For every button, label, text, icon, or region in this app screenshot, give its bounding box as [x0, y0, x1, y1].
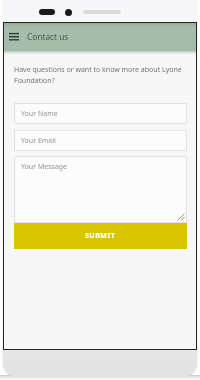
- staticText: Have questions or want to know more abou…: [14, 65, 186, 85]
- staticText: Contact us: [27, 31, 69, 42]
- button[interactable]: Your Message: [14, 156, 187, 223]
- staticText: SUBMIT: [85, 231, 116, 241]
- button[interactable]: Your Name: [14, 103, 187, 124]
- button[interactable]: SUBMIT: [14, 223, 187, 249]
- button[interactable]: Your Email: [14, 130, 187, 151]
- staticText: Your Name: [21, 109, 58, 119]
- button[interactable]: Open navigation menu: [6, 29, 22, 45]
- staticText: Your Email: [21, 136, 56, 146]
- staticText: Your Message: [21, 162, 68, 172]
